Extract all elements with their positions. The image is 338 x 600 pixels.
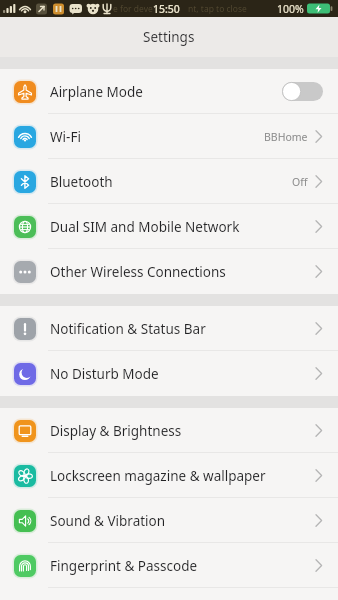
button[interactable]: Dual SIM and Mobile Network (0, 204, 338, 249)
button[interactable]: Other Wireless Connections (0, 249, 338, 294)
staticText: Lockscreen magazine & wallpaper (50, 467, 266, 485)
staticText: Fingerprint & Passcode (50, 557, 198, 575)
staticText: Display & Brightness (50, 422, 182, 440)
staticText: 15:50 (153, 2, 180, 16)
button[interactable]: Lockscreen magazine & wallpaper (0, 453, 338, 498)
button[interactable]: Display & Brightness (0, 408, 338, 453)
staticText: nt, tap to close (188, 3, 247, 15)
staticText: Other Wireless Connections (50, 263, 226, 281)
staticText: Wi-Fi (50, 128, 81, 146)
staticText: BBHome (264, 130, 308, 144)
staticText: Sound & Vibration (50, 512, 166, 530)
button[interactable]: Wi-Fi (0, 114, 338, 159)
staticText: Bluetooth (50, 173, 113, 191)
button[interactable]: Notification & Status Bar (0, 306, 338, 351)
staticText: e for deve (113, 3, 153, 15)
staticText: Settings (143, 28, 195, 46)
staticText: Notification & Status Bar (50, 320, 206, 338)
staticText: Airplane Mode (50, 83, 143, 101)
button[interactable]: No Disturb Mode (0, 351, 338, 396)
button[interactable]: Airplane Mode (0, 69, 338, 114)
staticText: Dual SIM and Mobile Network (50, 218, 240, 236)
button[interactable]: Sound & Vibration (0, 498, 338, 543)
staticText: Off (292, 175, 308, 189)
staticText: 100% (277, 2, 304, 16)
button[interactable]: Fingerprint & Passcode (0, 543, 338, 588)
staticText: No Disturb Mode (50, 365, 159, 383)
button[interactable]: Bluetooth (0, 159, 338, 204)
